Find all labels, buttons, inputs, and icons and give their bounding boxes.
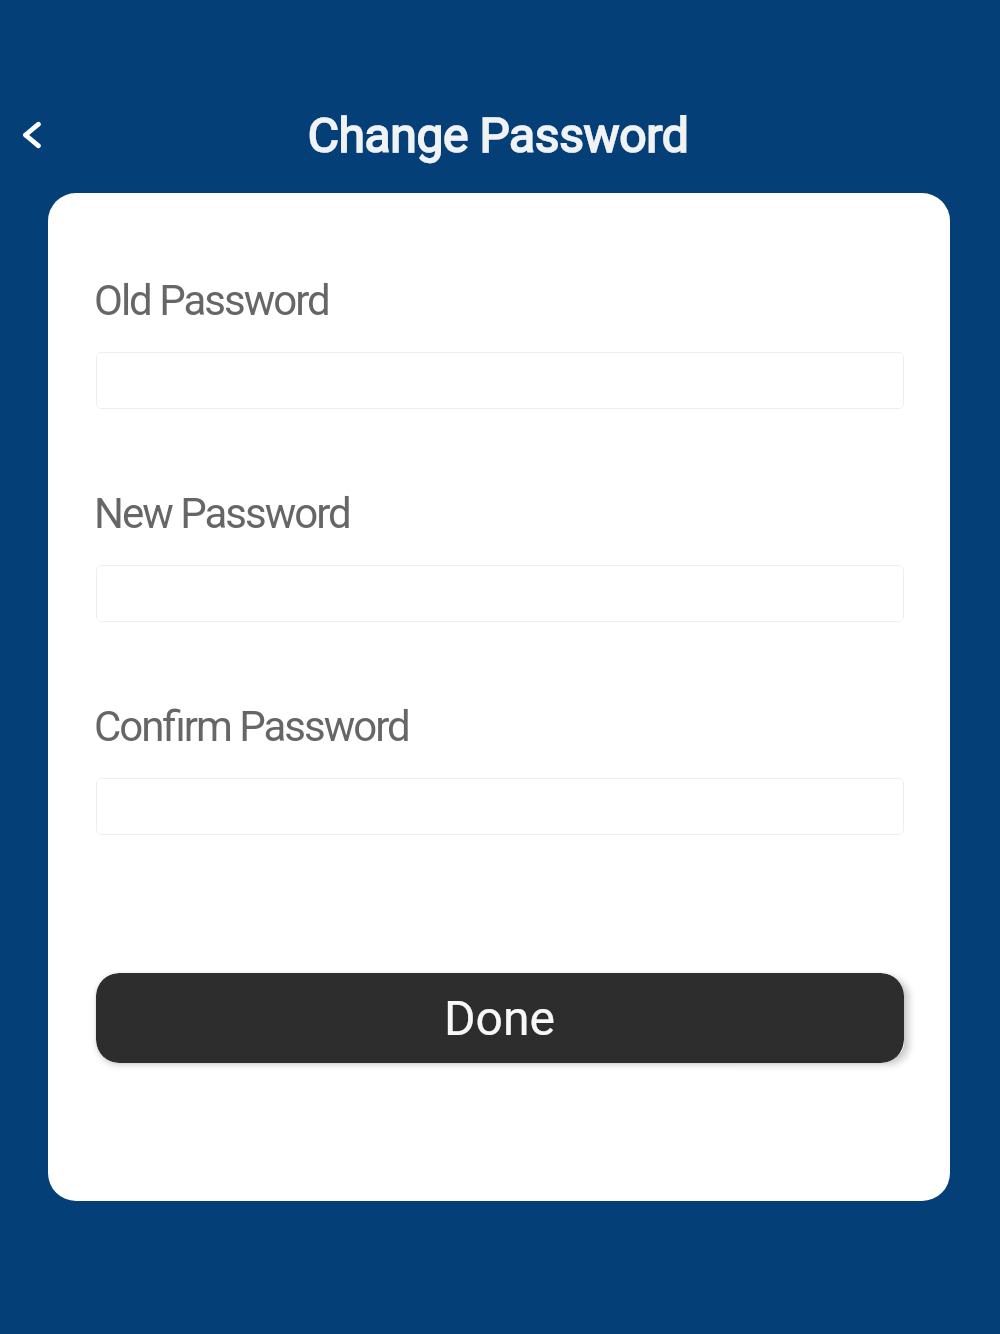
staticText: Change Password	[0, 107, 996, 163]
staticText: New Password	[94, 489, 350, 538]
button[interactable]: Back	[0, 91, 64, 179]
button[interactable]	[96, 352, 904, 409]
button[interactable]: Done	[96, 973, 904, 1063]
button[interactable]	[96, 565, 904, 622]
staticText: Done	[444, 990, 555, 1046]
button[interactable]	[96, 778, 904, 835]
staticText: Confirm Password	[94, 702, 409, 751]
staticText: Old Password	[94, 276, 329, 325]
